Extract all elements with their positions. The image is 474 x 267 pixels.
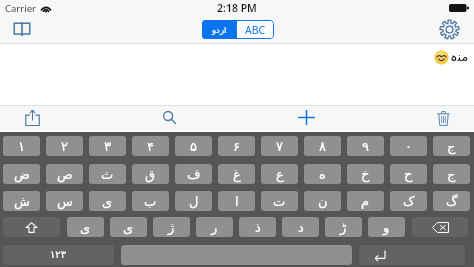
button[interactable]: Share (20, 106, 44, 129)
button[interactable]: ۶ (218, 136, 255, 156)
staticText: ذ (255, 220, 261, 235)
staticText: ر (211, 220, 218, 235)
button[interactable]: ض (3, 164, 40, 184)
button[interactable]: ذ (239, 217, 276, 237)
staticText: ک (403, 194, 415, 209)
button[interactable]: ع (261, 164, 298, 184)
button[interactable]: ا (218, 191, 255, 211)
button[interactable]: Settings (438, 18, 461, 41)
button[interactable]: د (282, 217, 319, 237)
staticText: ی (102, 194, 113, 209)
button[interactable]: ۸ (304, 136, 341, 156)
button[interactable]: ش (3, 191, 40, 211)
staticText: ۸ (319, 139, 326, 154)
button[interactable]: غ (218, 164, 255, 184)
button[interactable]: ه (304, 164, 341, 184)
button[interactable]: ABC (237, 20, 274, 39)
button[interactable]: ژ (153, 217, 190, 237)
button[interactable]: گ (433, 191, 470, 211)
staticText: ۳ (104, 139, 111, 154)
button[interactable]: Backspace (412, 217, 468, 237)
button[interactable]: ۵ (175, 136, 212, 156)
staticText: ج (447, 139, 456, 154)
staticText: ی (123, 220, 134, 235)
button[interactable]: ۰ (390, 136, 427, 156)
button[interactable]: ص (46, 164, 83, 184)
staticText: ت (273, 194, 286, 209)
staticText: ب (144, 194, 157, 209)
staticText: غ (233, 167, 241, 182)
button[interactable]: ح (390, 164, 427, 184)
button[interactable]: ۱۲۳ (3, 245, 114, 265)
staticText: خ (361, 167, 370, 182)
button[interactable]: ق (132, 164, 169, 184)
staticText: ث (101, 167, 114, 182)
button[interactable]: ۴ (132, 136, 169, 156)
staticText: ع (276, 167, 284, 182)
button[interactable]: ۳ (89, 136, 126, 156)
button[interactable]: ج (433, 164, 470, 184)
staticText: ABC (245, 23, 266, 37)
button[interactable]: ت (261, 191, 298, 211)
staticText: ح (404, 167, 413, 182)
button[interactable]: Shift (3, 217, 60, 237)
button[interactable]: ک (390, 191, 427, 211)
button[interactable]: Delete (431, 106, 455, 129)
button[interactable]: ج (433, 136, 470, 156)
button[interactable]: ۱ (3, 136, 40, 156)
staticText: د (298, 220, 304, 235)
button[interactable]: و (368, 217, 405, 237)
button[interactable]: ۹ (347, 136, 384, 156)
staticText: ۶ (233, 139, 240, 154)
button[interactable]: ب (132, 191, 169, 211)
staticText: منہ (450, 49, 469, 64)
staticText: ج (447, 167, 456, 182)
staticText: ه (319, 167, 326, 182)
staticText: ۷ (276, 139, 283, 154)
button[interactable]: خ (347, 164, 384, 184)
button[interactable]: Search (157, 106, 181, 129)
button[interactable]: ی (67, 217, 104, 237)
staticText: ن (318, 194, 328, 209)
button[interactable]: Add (294, 106, 318, 129)
staticText: و (383, 220, 390, 235)
button[interactable]: ن (304, 191, 341, 211)
button[interactable]: ی (110, 217, 147, 237)
staticText: ۵ (190, 139, 197, 154)
button[interactable]: ۷ (261, 136, 298, 156)
button[interactable]: ل (175, 191, 212, 211)
button[interactable]: ڑ (325, 217, 362, 237)
staticText: ض (14, 167, 30, 182)
staticText: ڑ (340, 220, 347, 235)
staticText: اردو (212, 25, 227, 35)
staticText: گ (446, 194, 458, 209)
button[interactable]: ی (89, 191, 126, 211)
button[interactable]: Return (359, 245, 465, 265)
staticText: 2:18 PM (217, 1, 257, 15)
staticText: ص (57, 167, 73, 182)
button[interactable]: Dictionary (12, 18, 32, 40)
button[interactable]: ف (175, 164, 212, 184)
staticText: ل (189, 194, 199, 209)
button[interactable]: ث (89, 164, 126, 184)
staticText: ۱۲۳ (50, 249, 67, 261)
staticText: ۱ (18, 139, 25, 154)
button[interactable]: م (347, 191, 384, 211)
staticText: ۰ (405, 139, 412, 154)
staticText: ژ (168, 220, 175, 235)
button[interactable]: ۲ (46, 136, 83, 156)
staticText: ۴ (147, 139, 154, 154)
staticText: ش (14, 194, 30, 209)
button[interactable]: ر (196, 217, 233, 237)
staticText: Carrier (5, 2, 36, 15)
staticText: س (57, 194, 73, 209)
staticText: ی (80, 220, 91, 235)
button[interactable]: س (46, 191, 83, 211)
staticText: ۹ (362, 139, 369, 154)
staticText: ۲ (61, 139, 68, 154)
button[interactable]: اردو (202, 20, 237, 39)
staticText: ق (145, 167, 156, 182)
staticText: م (361, 194, 370, 209)
staticText: ا (235, 194, 239, 209)
